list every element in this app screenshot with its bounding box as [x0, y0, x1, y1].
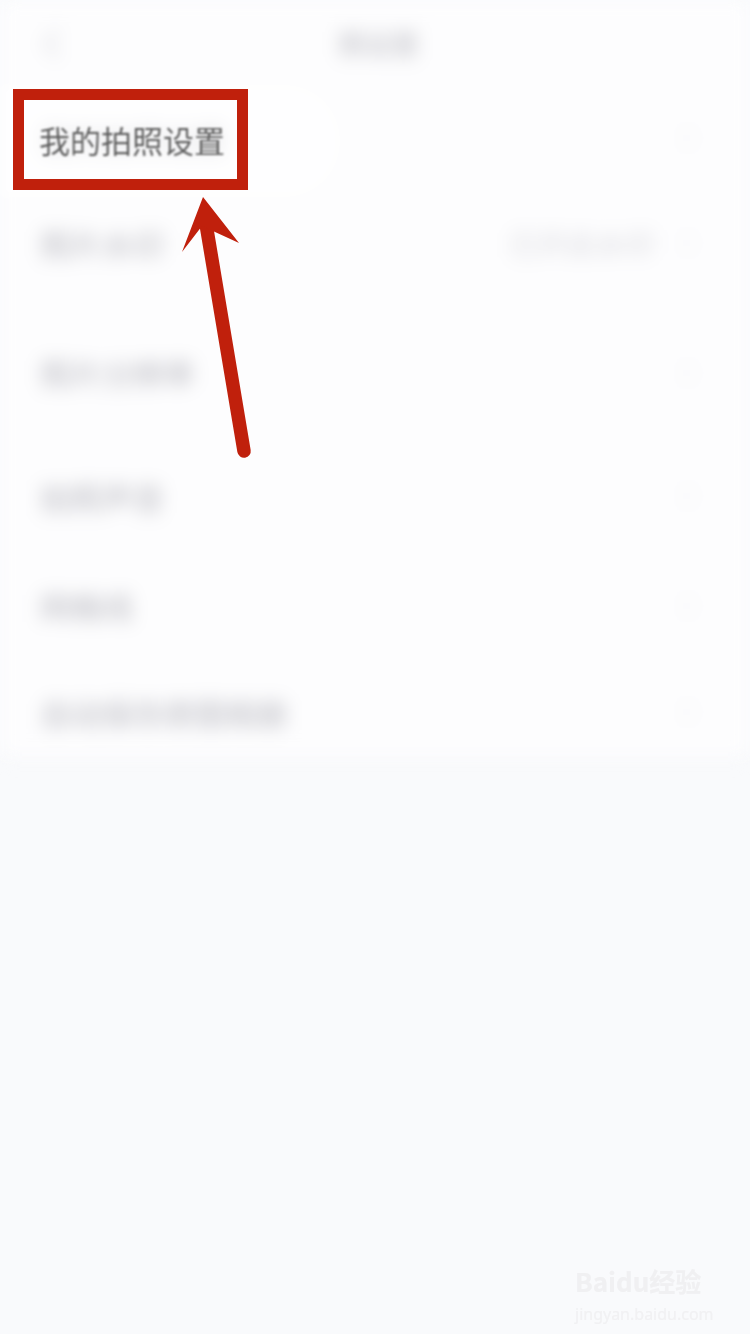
- staticText: 我的拍照设置: [39, 117, 225, 162]
- button[interactable]: 照片水印: [0, 191, 750, 295]
- staticText: 拍照声音: [40, 474, 164, 519]
- staticText: Baidu经验: [575, 1262, 702, 1300]
- button[interactable]: 拍照声音: [0, 450, 750, 542]
- staticText: 照设置: [338, 24, 419, 63]
- staticText: 照片水印: [40, 221, 164, 266]
- staticText: jingyan.baidu.com: [575, 1303, 714, 1325]
- staticText: 自动保存原图相册: [40, 690, 288, 735]
- button[interactable]: 网格线: [0, 543, 750, 668]
- staticText: 网格线: [40, 583, 133, 628]
- staticText: 我的拍照设置: [40, 116, 226, 161]
- staticText: 照片分辨率: [40, 350, 195, 395]
- button[interactable]: 照片分辨率: [0, 296, 750, 449]
- button[interactable]: 自动保存原图相册: [0, 669, 750, 755]
- button[interactable]: 我的拍照设置: [0, 86, 750, 190]
